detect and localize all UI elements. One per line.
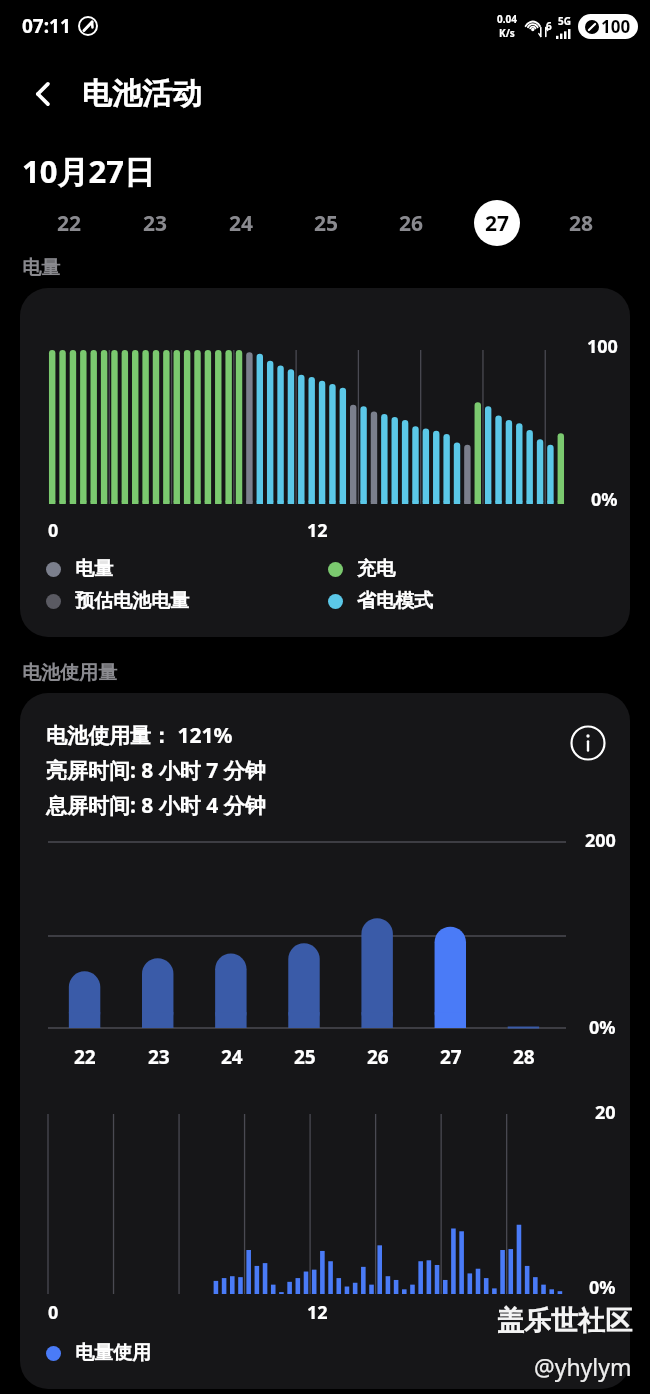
staticText: 07:11 <box>22 13 71 39</box>
button[interactable]: 22 <box>26 192 112 254</box>
staticText: 28 <box>569 209 594 238</box>
button[interactable]: 27 <box>454 192 539 254</box>
staticText: 26 <box>399 209 424 238</box>
staticText: 电池活动 <box>82 75 202 113</box>
staticText: 0 <box>48 518 59 543</box>
staticText: 5G <box>558 14 571 28</box>
staticText: 24 <box>229 209 254 238</box>
staticText: @yhylym <box>534 1351 632 1382</box>
staticText: 22 <box>74 1044 96 1070</box>
staticText: 电量 <box>22 256 60 280</box>
staticText: 6 <box>546 19 552 33</box>
staticText: 充电 <box>357 557 395 581</box>
staticText: 25 <box>294 1044 316 1070</box>
button[interactable]: 23 <box>112 192 198 254</box>
staticText: 0% <box>589 1275 616 1300</box>
staticText: 息屏时间: 8 小时 4 分钟 <box>46 791 266 820</box>
staticText: 23 <box>143 209 168 238</box>
staticText: 200 <box>585 828 616 853</box>
button[interactable]: 100 <box>20 288 630 637</box>
staticText: 省电模式 <box>357 589 433 613</box>
staticText: 27 <box>485 209 510 238</box>
staticText: 100 <box>601 15 631 38</box>
staticText: 盖乐世社区 <box>497 1304 632 1338</box>
staticText: 12 <box>307 518 328 543</box>
staticText: 28 <box>513 1044 535 1070</box>
staticText: K/s <box>499 26 515 40</box>
staticText: 电量使用 <box>75 1341 151 1365</box>
staticText: 25 <box>314 209 339 238</box>
staticText: 电池使用量： 121% <box>46 721 233 750</box>
staticText: 27 <box>440 1044 462 1070</box>
staticText: 24 <box>221 1044 243 1070</box>
staticText: 23 <box>148 1044 170 1070</box>
button[interactable]: Info <box>566 721 610 765</box>
staticText: 22 <box>57 209 82 238</box>
staticText: 100 <box>587 334 618 359</box>
button[interactable]: 24 <box>198 192 284 254</box>
staticText: 电池使用量 <box>22 661 117 685</box>
button[interactable]: Back <box>16 66 72 122</box>
staticText: 0% <box>589 1015 616 1040</box>
staticText: 0.04 <box>497 12 517 26</box>
button[interactable]: 28 <box>539 192 624 254</box>
button[interactable]: 26 <box>369 192 454 254</box>
staticText: 12 <box>307 1300 328 1325</box>
button[interactable]: 25 <box>284 192 369 254</box>
staticText: 预估电池电量 <box>75 589 189 613</box>
staticText: 10月27日 <box>22 150 155 192</box>
staticText: 0 <box>48 1300 59 1325</box>
staticText: 26 <box>367 1044 389 1070</box>
staticText: 0% <box>591 487 618 512</box>
staticText: 20 <box>595 1100 616 1125</box>
staticText: 电量 <box>75 557 113 581</box>
staticText: 亮屏时间: 8 小时 7 分钟 <box>46 756 266 785</box>
